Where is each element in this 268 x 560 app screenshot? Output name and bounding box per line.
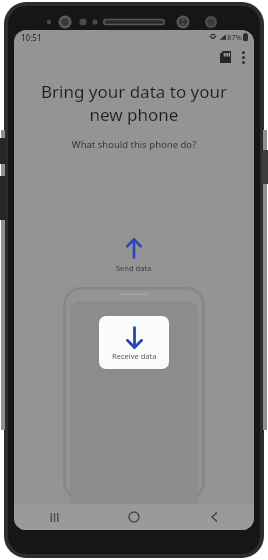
button[interactable]: SD card [216,47,235,67]
staticText: 87% [227,32,242,42]
staticText: What should this phone do? [14,138,254,151]
staticText: Send data [116,263,152,273]
button[interactable]: More options [237,46,250,69]
staticText: Bring your data to your new phone [14,80,254,126]
button[interactable]: Send data [106,235,162,276]
staticText: Receive data [112,351,157,361]
button[interactable]: Back [174,504,254,530]
button[interactable]: Recent apps [14,504,94,530]
staticText: 10:51 [21,32,42,43]
button[interactable]: Receive data [99,316,169,369]
button[interactable]: Home [94,504,174,530]
